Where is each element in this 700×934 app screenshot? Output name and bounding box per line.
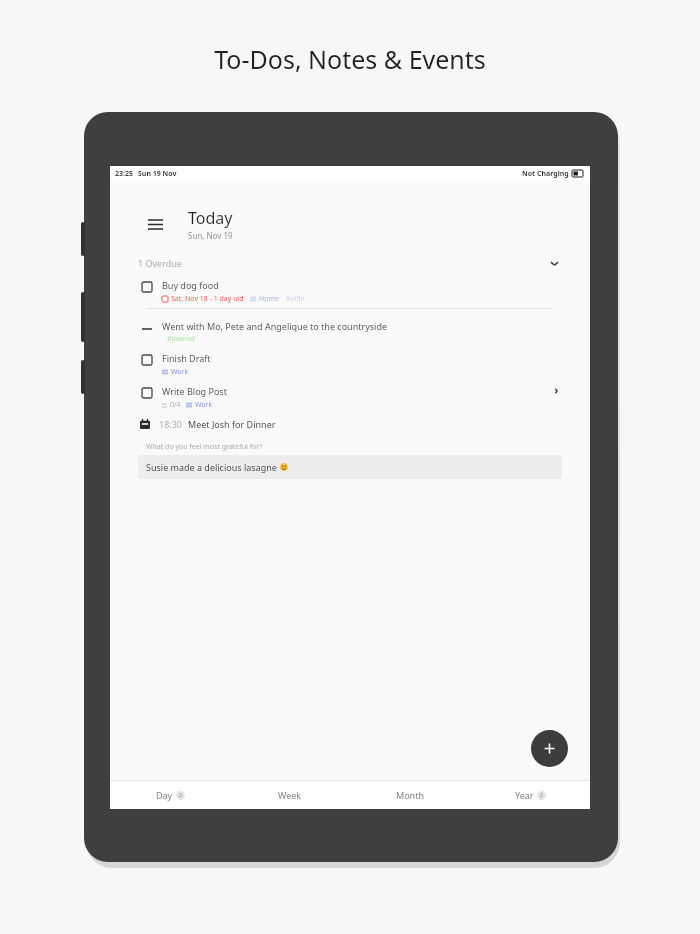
staticText: 2 (179, 792, 182, 799)
staticText: Write Blog Post (162, 385, 227, 397)
button[interactable]: Add (531, 730, 568, 767)
button[interactable]: 1 Overdue (138, 257, 560, 269)
staticText: Sun, Nov 19 (188, 230, 233, 241)
staticText: Month (396, 789, 424, 801)
button[interactable]: Menu (142, 211, 168, 237)
staticText: To-Dos, Notes & Events (214, 42, 486, 76)
staticText: 18:30 (159, 418, 183, 430)
staticText: Finish Draft (162, 352, 211, 364)
button[interactable]: Susie made a delicious lasagne (138, 455, 562, 479)
staticText: Work (171, 367, 189, 377)
staticText: What do you feel most grateful for? (146, 442, 263, 452)
staticText: Meet Josh for Dinner (188, 418, 276, 430)
staticText: 1 Overdue (138, 257, 182, 269)
button[interactable]: Write Blog Post (142, 385, 560, 410)
staticText: #alfie (286, 294, 305, 304)
staticText: Day (156, 789, 173, 801)
staticText: Year (515, 789, 534, 801)
staticText: Sat, Nov 18 - 1 day old (171, 294, 244, 304)
staticText: Work (195, 400, 213, 410)
staticText: Sun 19 Nov (138, 169, 177, 179)
button[interactable]: Finish Draft (142, 352, 560, 377)
button[interactable]: Day (110, 781, 230, 809)
staticText: 2 (540, 792, 543, 799)
staticText: 0/4 (170, 400, 181, 410)
staticText: Went with Mo, Pete and Angelique to the … (162, 320, 388, 332)
staticText: Susie made a delicious lasagne (146, 461, 277, 473)
button[interactable]: Week (230, 781, 350, 809)
button[interactable]: Buy dog food (142, 279, 560, 304)
button[interactable]: 18:30 (140, 418, 560, 430)
button[interactable]: Year (470, 781, 590, 809)
staticText: Not Charging (522, 169, 569, 179)
staticText: 23:25 (115, 169, 133, 179)
staticText: Buy dog food (162, 279, 219, 291)
staticText: Week (278, 789, 302, 801)
button[interactable]: Month (350, 781, 470, 809)
button[interactable]: Went with Mo, Pete and Angelique to the … (142, 320, 560, 344)
staticText: Home (259, 294, 279, 304)
staticText: #journal (167, 334, 195, 344)
staticText: Today (188, 207, 233, 229)
